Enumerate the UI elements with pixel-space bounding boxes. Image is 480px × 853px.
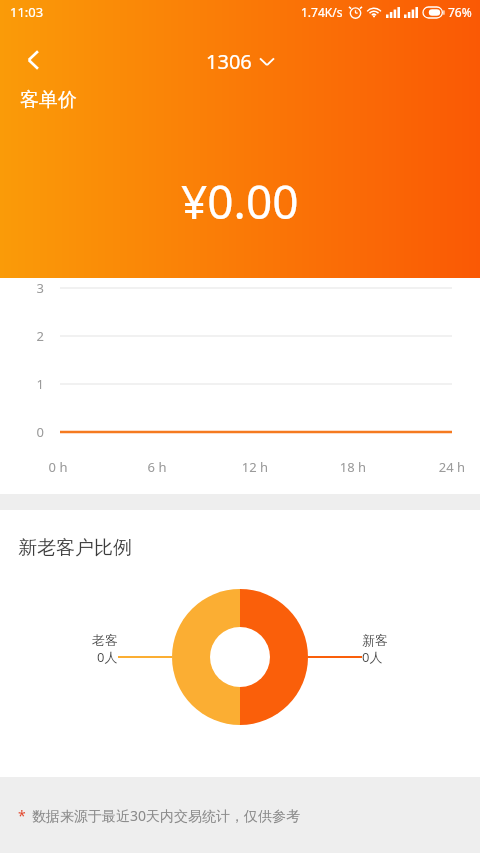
staticText: 76%	[448, 4, 472, 20]
staticText: *	[18, 806, 26, 825]
staticText: 0人	[362, 648, 383, 666]
staticText: 客单价	[20, 88, 77, 112]
button[interactable]: 1306	[198, 44, 282, 79]
staticText: ¥0.00	[181, 170, 299, 233]
staticText: 1	[0, 375, 44, 393]
staticText: 0人	[97, 648, 118, 666]
staticText: 老客	[92, 632, 118, 648]
staticText: 1306	[206, 48, 252, 75]
staticText: 新老客户比例	[18, 536, 132, 560]
staticText: 0	[0, 423, 44, 441]
staticText: 3	[0, 279, 44, 297]
staticText: 0 h	[34, 458, 82, 476]
staticText: 6 h	[133, 458, 181, 476]
staticText: 新客	[362, 632, 388, 648]
staticText: 11:03	[10, 3, 44, 21]
button[interactable]: Back	[12, 38, 56, 82]
staticText: 1.74K/s	[301, 4, 343, 20]
staticText: 18 h	[329, 458, 377, 476]
staticText: 24 h	[428, 458, 476, 476]
staticText: 12 h	[231, 458, 279, 476]
staticText: 数据来源于最近30天内交易统计，仅供参考	[32, 806, 301, 825]
staticText: 2	[0, 327, 44, 345]
